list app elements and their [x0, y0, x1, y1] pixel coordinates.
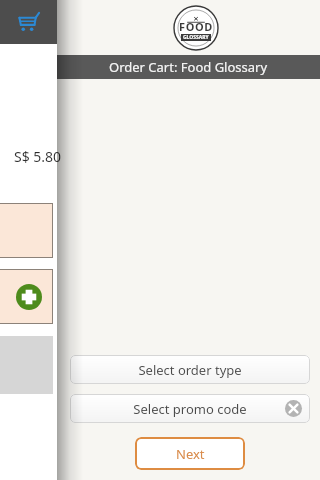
button[interactable]: Select order type — [70, 355, 310, 384]
staticText: FOOD — [179, 19, 213, 34]
staticText: Select promo code — [133, 400, 247, 418]
button[interactable] — [0, 203, 53, 258]
other: Add item — [16, 284, 42, 310]
staticText: Next — [176, 445, 205, 463]
staticText: GLOSSARY — [183, 34, 209, 41]
button[interactable]: Clear promo code — [285, 400, 302, 417]
button[interactable]: Select promo code — [70, 394, 310, 423]
staticText: Select order type — [138, 361, 242, 379]
staticText: Order Cart: Food Glossary — [109, 58, 268, 76]
button[interactable]: Next — [135, 437, 245, 470]
staticText: S$ 5.80 — [14, 147, 62, 166]
button[interactable]: Add item — [0, 269, 53, 324]
button[interactable]: Cart — [0, 0, 57, 44]
